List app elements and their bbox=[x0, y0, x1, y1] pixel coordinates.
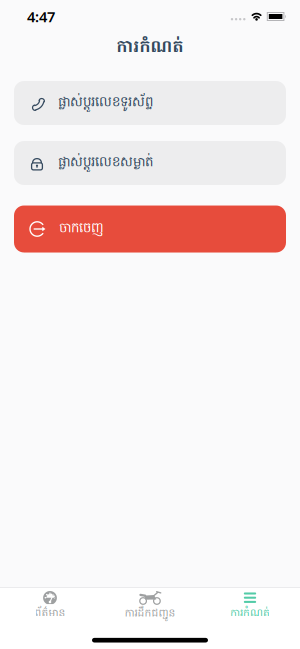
button[interactable]: ផ្លាស់ប្តូរលេខទូរស័ព្ទ bbox=[14, 81, 286, 125]
button[interactable]: ការដឹកជញ្ជូន bbox=[100, 591, 200, 621]
staticText: ការកំណត់ bbox=[230, 606, 270, 621]
staticText: ការដឹកជញ្ជូន bbox=[124, 606, 175, 621]
button[interactable]: ផ្លាស់ប្តូរលេខសម្ងាត់ bbox=[14, 141, 286, 185]
staticText: ផ្លាស់ប្តូរលេខទូរស័ព្ទ bbox=[58, 93, 153, 112]
staticText: ផ្លាស់ប្តូរលេខសម្ងាត់ bbox=[58, 153, 153, 172]
staticText: ព័ត៌មាន bbox=[34, 606, 65, 621]
button[interactable]: ចាកចេញ bbox=[14, 205, 286, 252]
staticText: ការកំណត់ bbox=[116, 36, 183, 60]
button[interactable]: ព័ត៌មាន bbox=[0, 591, 100, 621]
button[interactable]: ការកំណត់ bbox=[200, 591, 300, 621]
staticText: ចាកចេញ bbox=[59, 219, 104, 238]
staticText: 4:47 bbox=[27, 7, 55, 26]
